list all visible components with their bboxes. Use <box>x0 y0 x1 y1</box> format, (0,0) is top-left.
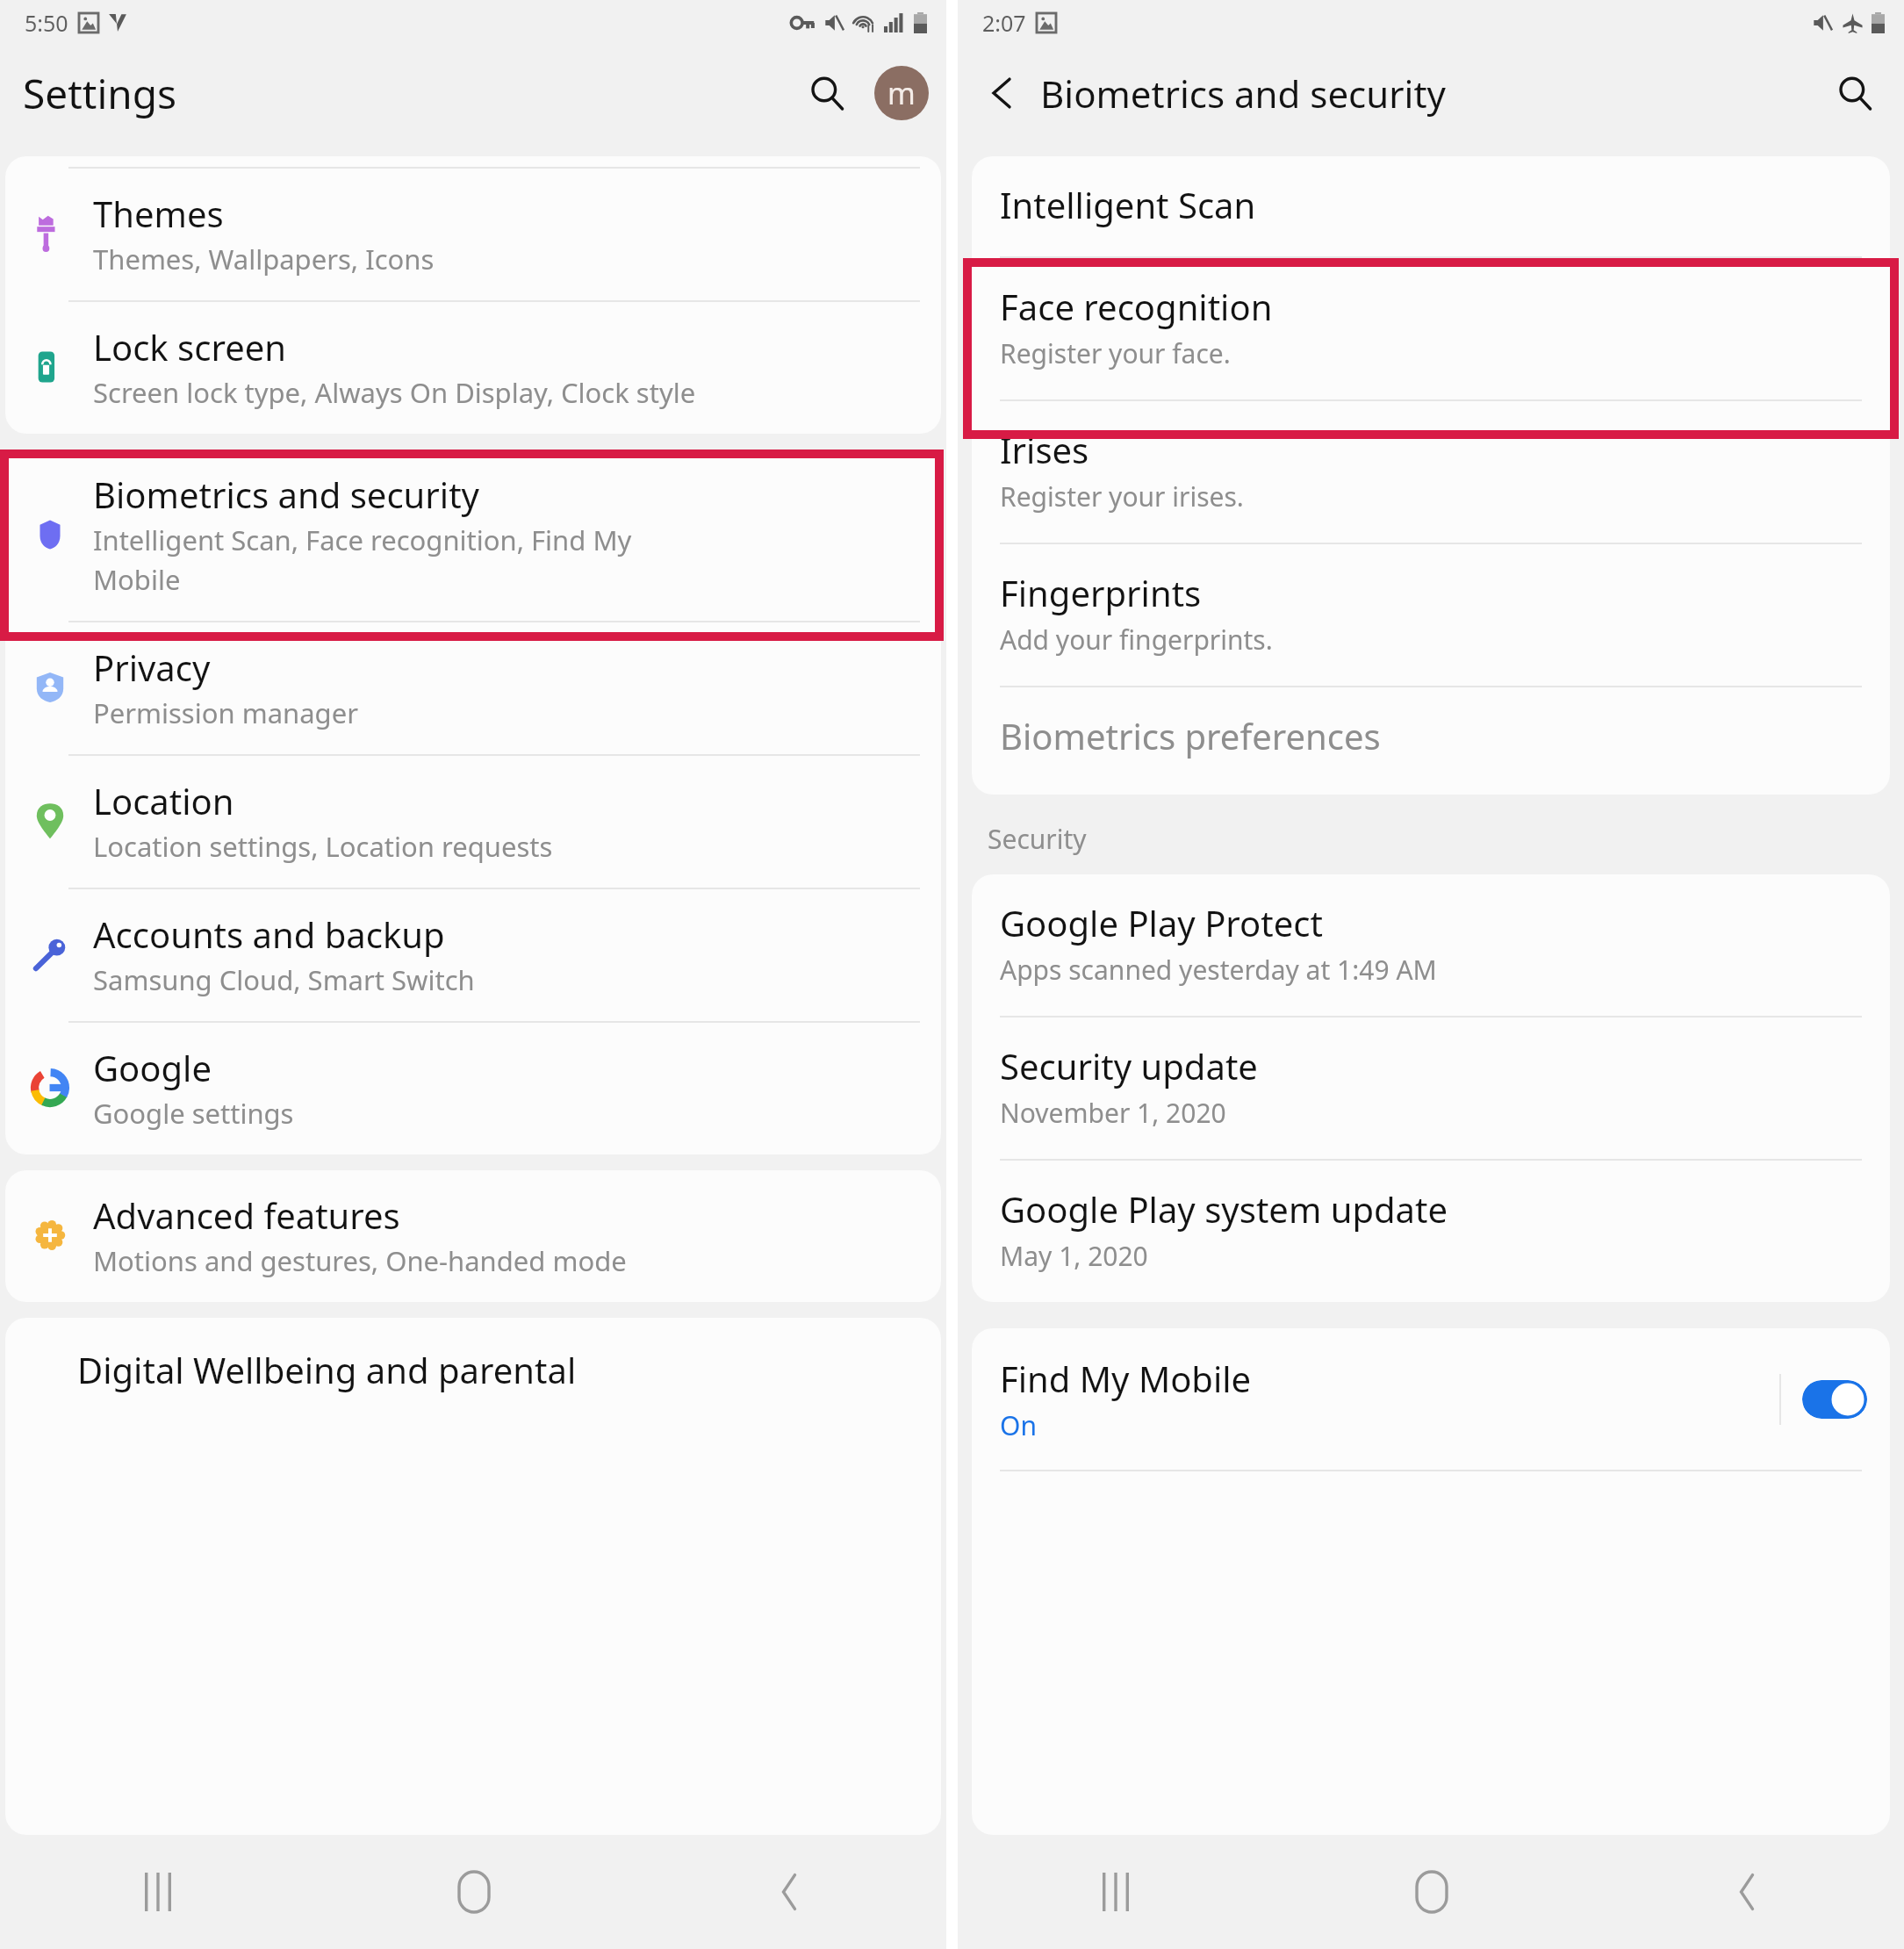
button[interactable]: Privacy <box>5 622 941 754</box>
staticText: Accounts and backup <box>93 910 445 958</box>
button[interactable]: Recents <box>0 1835 316 1949</box>
button[interactable]: Location <box>5 756 941 888</box>
button[interactable]: Find My Mobile <box>972 1328 1890 1470</box>
button[interactable]: Search <box>795 61 859 125</box>
staticText: Screen lock type, Always On Display, Clo… <box>93 374 696 411</box>
staticText: Digital Wellbeing and parental <box>77 1346 577 1393</box>
staticText: Biometrics preferences <box>1000 712 1381 759</box>
staticText: May 1, 2020 <box>1000 1238 1148 1274</box>
staticText: Google <box>93 1044 212 1091</box>
staticText: Apps scanned yesterday at 1:49 AM <box>1000 952 1437 988</box>
button[interactable]: Irises <box>972 401 1890 543</box>
button[interactable]: Lock screen <box>5 302 941 434</box>
staticText: m <box>887 73 916 113</box>
button[interactable]: Account <box>874 66 929 120</box>
button[interactable]: Home <box>316 1835 631 1949</box>
staticText: Lock screen <box>93 323 287 370</box>
staticText: Biometrics and security <box>93 471 479 518</box>
staticText: Location settings, Location requests <box>93 828 553 865</box>
button[interactable]: Google <box>5 1023 941 1154</box>
staticText: Motions and gestures, One-handed mode <box>93 1242 627 1279</box>
button[interactable]: Back <box>1589 1835 1904 1949</box>
button[interactable]: Google Play Protect <box>972 874 1890 1016</box>
staticText: Fingerprints <box>1000 569 1202 616</box>
staticText: Security <box>988 821 1087 857</box>
button[interactable]: Face recognition <box>972 258 1890 399</box>
staticText: 5:50 <box>25 8 68 38</box>
staticText: Biometrics and security <box>1040 68 1447 119</box>
staticText: November 1, 2020 <box>1000 1095 1226 1131</box>
button[interactable]: Security update <box>972 1018 1890 1159</box>
staticText: On <box>1000 1407 1037 1443</box>
button[interactable]: Biometrics and security <box>5 449 941 621</box>
staticText: Face recognition <box>1000 283 1273 330</box>
staticText: Irises <box>1000 426 1089 473</box>
button[interactable]: Recents <box>958 1835 1274 1949</box>
button[interactable]: Advanced features <box>5 1170 941 1302</box>
button[interactable]: Accounts and backup <box>5 889 941 1021</box>
staticText: Add your fingerprints. <box>1000 622 1273 658</box>
staticText: Google Play Protect <box>1000 899 1323 946</box>
staticText: Permission manager <box>93 694 358 731</box>
button[interactable]: Back <box>631 1835 946 1949</box>
button[interactable]: Home <box>1274 1835 1589 1949</box>
button[interactable]: Fingerprints <box>972 544 1890 686</box>
staticText: Intelligent Scan <box>1000 181 1256 228</box>
staticText: 2:07 <box>982 8 1026 38</box>
staticText: Themes <box>93 190 224 237</box>
staticText: Location <box>93 777 234 824</box>
button[interactable]: Search <box>1823 61 1886 125</box>
staticText: Privacy <box>93 644 211 691</box>
staticText: Google settings <box>93 1095 294 1132</box>
staticText: Samsung Cloud, Smart Switch <box>93 961 475 998</box>
button[interactable]: Back <box>970 61 1033 125</box>
staticText: Settings <box>23 66 177 121</box>
button[interactable]: Intelligent Scan <box>972 156 1890 256</box>
staticText: Find My Mobile <box>1000 1355 1252 1402</box>
button[interactable]: Themes <box>5 169 941 300</box>
staticText: Intelligent Scan, Face recognition, Find… <box>93 521 632 598</box>
button[interactable]: Find My Mobile toggle <box>1802 1380 1867 1419</box>
staticText: Google Play system update <box>1000 1185 1448 1233</box>
staticText: Security update <box>1000 1042 1258 1090</box>
button[interactable]: Google Play system update <box>972 1161 1890 1302</box>
staticText: Advanced features <box>93 1191 400 1239</box>
button[interactable]: Digital Wellbeing and parental <box>5 1318 941 1835</box>
staticText: Register your face. <box>1000 335 1231 371</box>
staticText: Themes, Wallpapers, Icons <box>93 241 435 277</box>
staticText: Register your irises. <box>1000 478 1244 514</box>
